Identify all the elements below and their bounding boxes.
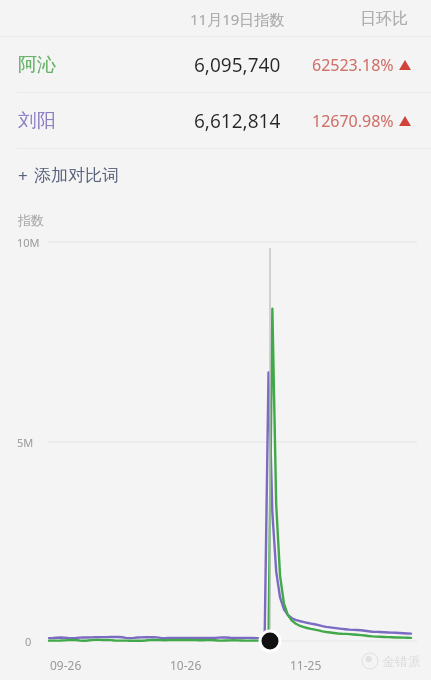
button[interactable]: 阿沁	[0, 37, 431, 93]
staticText: 阿沁	[18, 53, 56, 77]
staticText: 0	[25, 634, 32, 649]
staticText: 11月19日指数	[190, 9, 285, 29]
staticText: 10-26	[170, 657, 202, 673]
staticText: 日环比	[360, 9, 408, 29]
staticText: 金错派	[382, 653, 421, 669]
button[interactable]: +	[0, 149, 431, 201]
staticText: +	[18, 164, 28, 187]
staticText: 12670.98%	[312, 110, 394, 132]
staticText: 62523.18%	[312, 54, 394, 76]
staticText: 5M	[17, 435, 34, 450]
button[interactable]: 刘阳	[0, 93, 431, 149]
staticText: 指数	[18, 212, 44, 228]
staticText: 11-25	[290, 657, 322, 673]
staticText: 添加对比词	[34, 165, 119, 186]
staticText: 刘阳	[18, 109, 56, 133]
staticText: 6,095,740	[194, 52, 281, 78]
staticText: 09-26	[50, 657, 82, 673]
staticText: 10M	[17, 235, 40, 250]
staticText: 6,612,814	[194, 108, 281, 134]
